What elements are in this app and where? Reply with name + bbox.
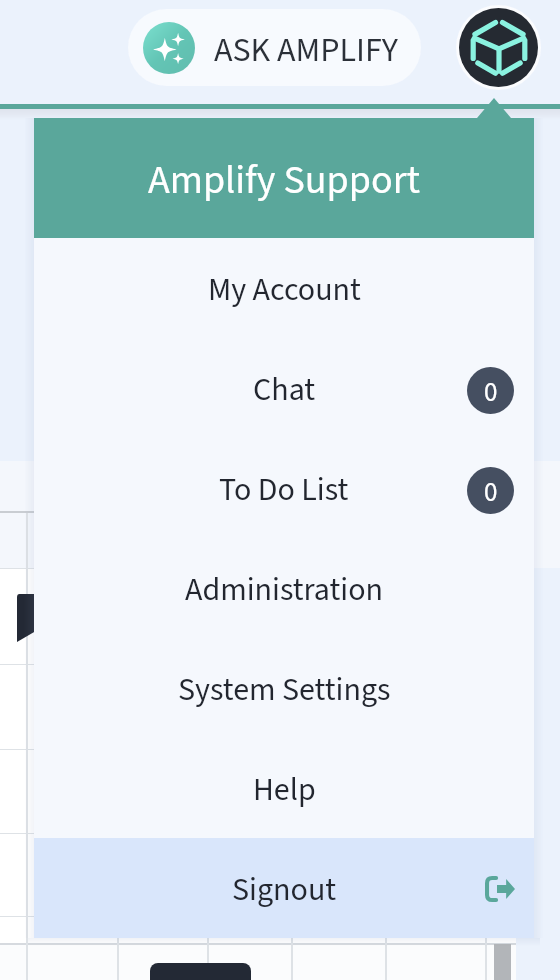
staticText: My Account: [208, 267, 361, 313]
staticText: Chat: [253, 367, 316, 413]
button[interactable]: Administration: [34, 538, 534, 638]
button[interactable]: Signout: [34, 838, 534, 938]
staticText: 0: [484, 373, 498, 411]
staticText: System Settings: [178, 667, 391, 713]
staticText: 0: [484, 473, 498, 511]
staticText: Amplify Support: [148, 152, 421, 209]
staticText: To Do List: [219, 467, 349, 513]
button[interactable]: ASK AMPLIFY: [128, 9, 421, 86]
button[interactable]: Help: [34, 738, 534, 838]
button[interactable]: Account menu: [456, 5, 541, 90]
staticText: Signout: [232, 867, 337, 913]
button[interactable]: To Do List: [34, 438, 534, 538]
staticText: Help: [253, 767, 316, 813]
other: Signout: [485, 876, 515, 902]
button[interactable]: System Settings: [34, 638, 534, 738]
button[interactable]: My Account: [34, 238, 534, 338]
staticText: Administration: [185, 567, 384, 613]
staticText: ASK AMPLIFY: [214, 26, 399, 74]
button[interactable]: Chat: [34, 338, 534, 438]
